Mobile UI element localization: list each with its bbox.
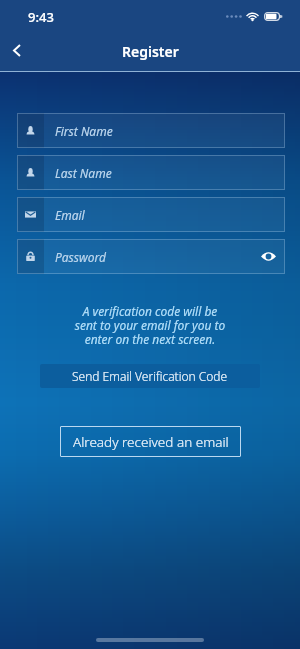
staticText: Password bbox=[55, 249, 106, 265]
staticText: Already received an email bbox=[73, 433, 229, 451]
button[interactable]: First Name bbox=[17, 113, 285, 148]
button[interactable]: Last Name bbox=[17, 155, 285, 190]
button[interactable]: Email bbox=[17, 197, 285, 232]
staticText: Register bbox=[122, 42, 179, 61]
staticText: A verification code will be sent to your… bbox=[0, 303, 300, 347]
staticText: First Name bbox=[55, 123, 113, 139]
button[interactable]: Show password bbox=[251, 239, 285, 274]
staticText: 9:43 bbox=[28, 8, 54, 26]
button[interactable]: Password bbox=[17, 239, 285, 274]
button[interactable]: Back bbox=[1, 32, 33, 68]
staticText: Email bbox=[55, 207, 85, 223]
staticText: Last Name bbox=[55, 165, 112, 181]
button[interactable]: Already received an email bbox=[60, 426, 241, 457]
staticText: Send Email Verification Code bbox=[72, 368, 228, 384]
button[interactable]: Send Email Verification Code bbox=[40, 364, 260, 388]
